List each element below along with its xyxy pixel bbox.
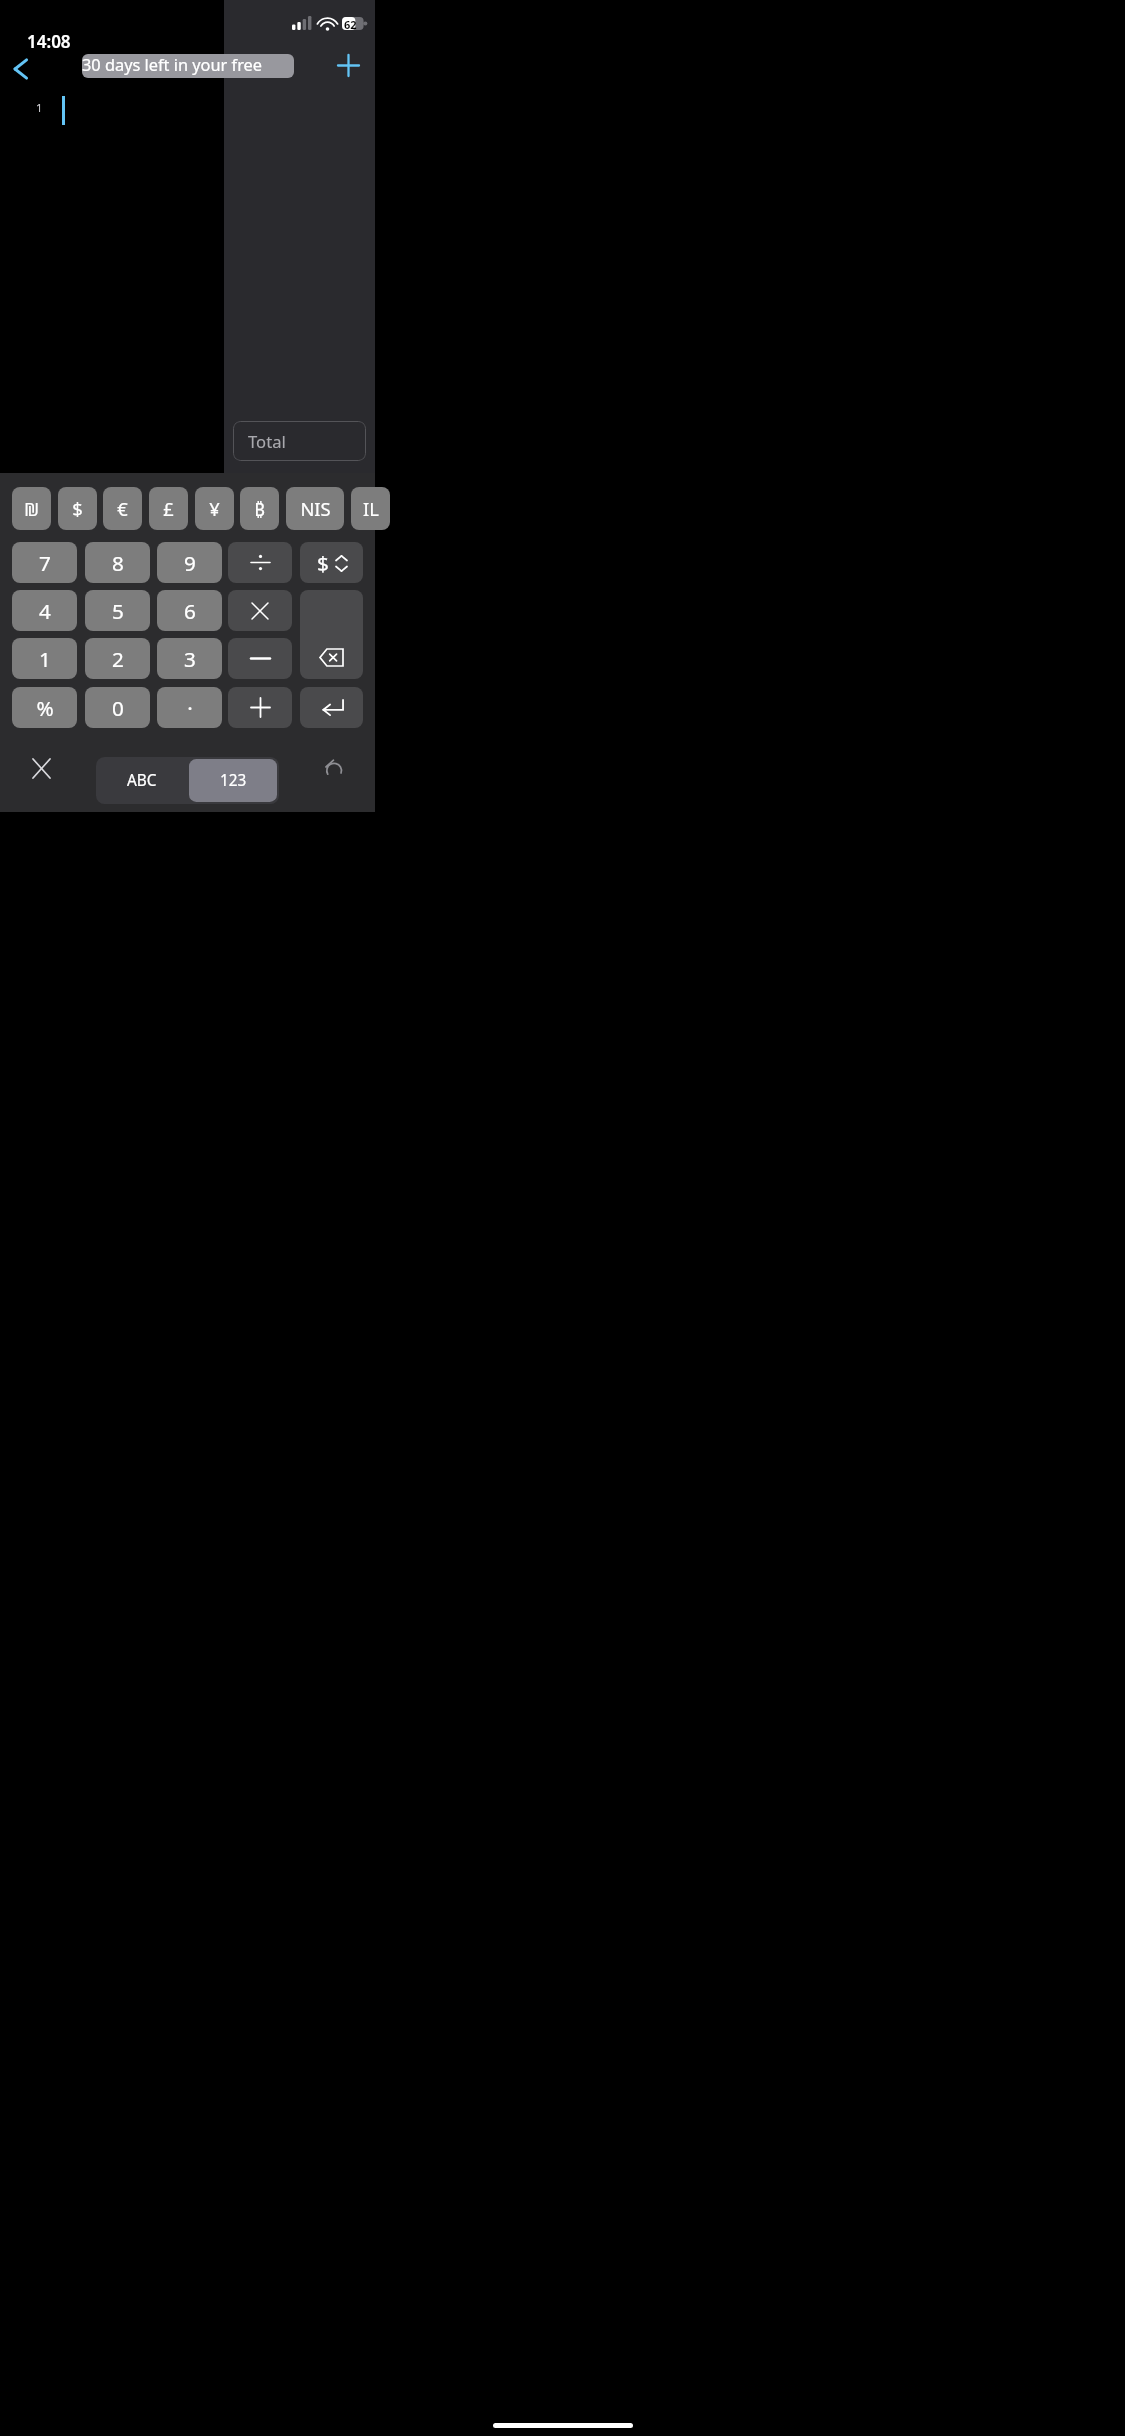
button[interactable]: Multiply bbox=[228, 590, 292, 631]
button[interactable]: Minus bbox=[228, 638, 292, 679]
staticText: % bbox=[36, 694, 54, 722]
button[interactable]: Close keyboard bbox=[23, 750, 60, 787]
button[interactable]: Change currency bbox=[300, 542, 363, 583]
staticText: 1 bbox=[39, 645, 51, 673]
staticText: 6 bbox=[184, 597, 196, 625]
button[interactable]: € bbox=[103, 487, 142, 530]
button[interactable]: Total bbox=[233, 421, 366, 461]
staticText: ₪ bbox=[24, 496, 39, 521]
button[interactable]: Return bbox=[300, 687, 363, 728]
button[interactable]: NIS bbox=[286, 487, 344, 530]
button[interactable]: 7 bbox=[12, 542, 77, 583]
button[interactable]: £ bbox=[149, 487, 188, 530]
staticText: ABC bbox=[127, 770, 157, 791]
button[interactable]: Divide bbox=[228, 542, 292, 583]
button[interactable]: 5 bbox=[85, 590, 150, 631]
staticText: Total bbox=[248, 430, 286, 453]
staticText: · bbox=[187, 694, 193, 722]
button[interactable]: ABC bbox=[96, 757, 187, 804]
button[interactable]: % bbox=[12, 687, 77, 728]
button[interactable]: 9 bbox=[157, 542, 222, 583]
staticText: 4 bbox=[39, 597, 51, 625]
staticText: 30 days left in your free trial bbox=[82, 54, 294, 78]
button[interactable]: $ bbox=[58, 487, 97, 530]
button[interactable]: ₪ bbox=[12, 487, 51, 530]
staticText: 8 bbox=[112, 549, 124, 577]
button[interactable]: ¥ bbox=[195, 487, 234, 530]
staticText: ₿ bbox=[254, 496, 265, 521]
button[interactable]: Plus bbox=[228, 687, 292, 728]
staticText: $ bbox=[72, 496, 83, 521]
staticText: $ bbox=[317, 549, 329, 577]
button[interactable]: 6 bbox=[157, 590, 222, 631]
button[interactable]: · bbox=[157, 687, 222, 728]
staticText: £ bbox=[163, 496, 174, 521]
button[interactable]: ₿ bbox=[240, 487, 279, 530]
staticText: 7 bbox=[39, 549, 51, 577]
staticText: 2 bbox=[112, 645, 124, 673]
staticText: ¥ bbox=[209, 496, 220, 521]
button[interactable]: 0 bbox=[85, 687, 150, 728]
button[interactable]: Backspace bbox=[300, 590, 363, 679]
button[interactable]: 3 bbox=[157, 638, 222, 679]
button[interactable]: 4 bbox=[12, 590, 77, 631]
staticText: 9 bbox=[184, 549, 196, 577]
staticText: € bbox=[117, 496, 128, 521]
button[interactable]: Add bbox=[328, 47, 369, 84]
button[interactable]: 2 bbox=[85, 638, 150, 679]
button[interactable]: 30 days left in your free trial bbox=[82, 54, 294, 78]
button[interactable]: 123 bbox=[189, 759, 277, 802]
button[interactable]: Back bbox=[0, 50, 41, 87]
button[interactable]: 8 bbox=[85, 542, 150, 583]
staticText: IL bbox=[363, 496, 379, 521]
staticText: 1 bbox=[36, 100, 43, 115]
staticText: 3 bbox=[184, 645, 196, 673]
staticText: NIS bbox=[300, 496, 331, 521]
staticText: 62 bbox=[344, 17, 357, 32]
staticText: 5 bbox=[112, 597, 124, 625]
button[interactable]: IL bbox=[351, 487, 390, 530]
button[interactable]: Undo bbox=[313, 750, 353, 787]
staticText: 123 bbox=[220, 770, 247, 791]
button[interactable]: 1 bbox=[12, 638, 77, 679]
staticText: 14:08 bbox=[27, 30, 71, 53]
staticText: 0 bbox=[112, 694, 124, 722]
